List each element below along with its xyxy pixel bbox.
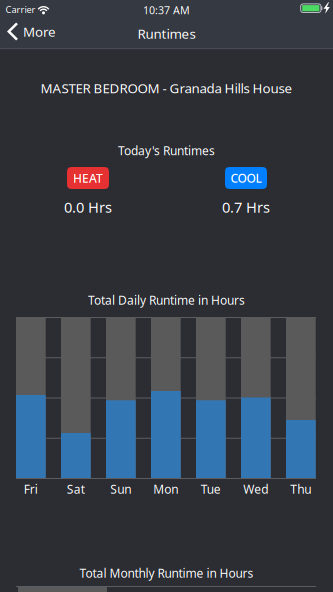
staticText: Runtimes	[137, 25, 195, 42]
staticText: 0.0 Hrs	[64, 197, 112, 217]
staticText: Mon	[153, 481, 178, 497]
staticText: COOL	[230, 170, 261, 186]
staticText: Today's Runtimes	[118, 142, 215, 158]
staticText: 0.7 Hrs	[222, 197, 270, 217]
staticText: Total Daily Runtime in Hours	[88, 292, 245, 308]
button[interactable]: COOL	[225, 167, 267, 189]
staticText: MASTER BEDROOM - Granada Hills House	[40, 79, 292, 97]
staticText: Sat	[67, 481, 85, 497]
staticText: Total Monthly Runtime in Hours	[79, 565, 253, 581]
staticText: HEAT	[73, 170, 103, 186]
staticText: Carrier	[5, 3, 35, 16]
staticText: Sun	[110, 481, 131, 497]
staticText: Fri	[24, 481, 38, 497]
staticText: More	[23, 23, 56, 40]
button[interactable]: HEAT	[67, 167, 109, 189]
staticText: Wed	[243, 481, 268, 497]
button[interactable]: More	[0, 17, 66, 45]
staticText: Tue	[201, 481, 221, 497]
staticText: Thu	[290, 481, 311, 497]
staticText: 10:37 AM	[143, 3, 190, 17]
